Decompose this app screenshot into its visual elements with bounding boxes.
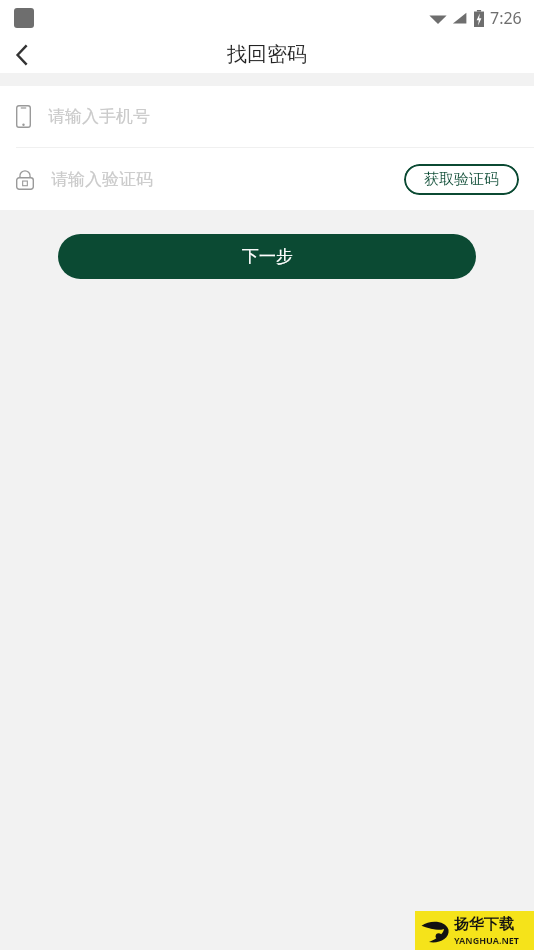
staticText: 下一步 [242, 246, 293, 267]
button[interactable]: Back [0, 36, 44, 73]
button[interactable]: 下一步 [58, 234, 476, 279]
button[interactable]: 请输入手机号 [0, 86, 534, 147]
staticText: 请输入验证码 [51, 169, 404, 190]
staticText: 扬华下载 [454, 915, 514, 934]
staticText: 找回密码 [227, 42, 307, 67]
staticText: YANGHUA.NET [454, 934, 520, 946]
button[interactable]: 获取验证码 [404, 164, 519, 195]
staticText: 获取验证码 [424, 170, 499, 189]
staticText: 请输入手机号 [48, 106, 150, 127]
staticText: 7:26 [490, 7, 522, 29]
